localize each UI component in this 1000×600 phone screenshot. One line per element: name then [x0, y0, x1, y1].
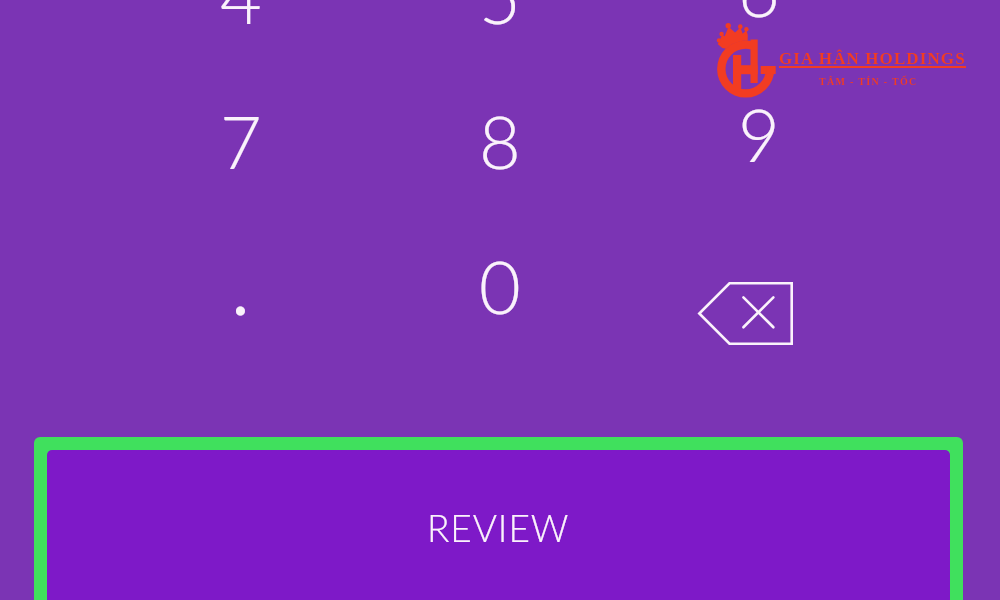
button[interactable]: REVIEW [47, 450, 950, 600]
staticText: 6 [738, 0, 780, 32]
staticText: 0 [479, 243, 521, 329]
button[interactable]: 5 [370, 0, 629, 68]
staticText: 4 [220, 0, 262, 39]
button[interactable]: 4 [111, 0, 370, 68]
staticText: 7 [220, 98, 262, 184]
button[interactable]: 7 [111, 68, 370, 213]
button[interactable]: . [111, 213, 370, 358]
button[interactable]: Backspace [629, 213, 888, 358]
button[interactable]: 8 [370, 68, 629, 213]
staticText: TÂM - TÍN - TỐC [819, 76, 918, 87]
staticText: REVIEW [427, 505, 570, 549]
button[interactable]: 6 [629, 0, 888, 68]
staticText: 5 [479, 0, 521, 39]
staticText: GIA HÂN HOLDINGS [779, 49, 966, 68]
staticText: 9 [738, 91, 780, 177]
button[interactable]: 0 [370, 213, 629, 358]
staticText: . [229, 220, 252, 335]
button[interactable]: 9 [629, 68, 888, 213]
staticText: 8 [479, 98, 521, 184]
